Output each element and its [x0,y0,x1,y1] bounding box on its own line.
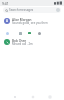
staticText: Missed call . 2m [12,42,33,46]
staticText: Alice Morgan [12,18,32,22]
staticText: Sounds good, see you then [12,21,48,25]
button[interactable]: Gallery [19,32,22,35]
button[interactable]: Search [3,7,61,13]
button[interactable]: Recents [46,93,53,100]
staticText: Bob Chen [12,39,27,43]
button[interactable]: A [0,15,64,27]
button[interactable]: Location [28,32,31,34]
staticText: A [6,19,9,23]
button[interactable]: Home [29,93,36,100]
button[interactable]: Back [11,93,18,100]
other: Search [5,9,8,12]
staticText: Search messages [9,8,34,12]
staticText: 9:41 [2,1,9,5]
button[interactable]: Bob Chen [0,36,64,48]
button[interactable]: More [38,32,41,35]
button[interactable]: Photos [6,32,9,35]
